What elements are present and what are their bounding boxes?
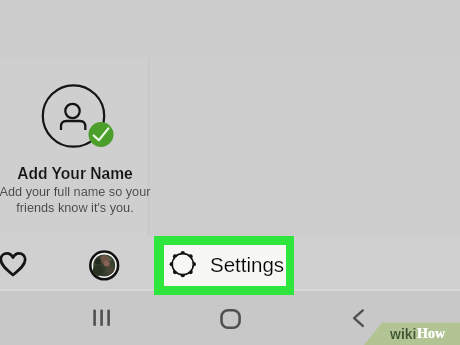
button[interactable]: Recent apps xyxy=(76,294,124,342)
staticText: Add Your Name xyxy=(0,165,211,182)
staticText: wiki xyxy=(390,326,417,342)
button[interactable]: Activity xyxy=(0,240,37,288)
button[interactable]: Home xyxy=(206,294,254,342)
staticText: How xyxy=(417,326,445,342)
button[interactable]: Profile xyxy=(80,240,128,288)
staticText: Settings xyxy=(210,253,285,276)
staticText: Add your full name so your friends know … xyxy=(0,185,211,215)
button[interactable]: Back xyxy=(336,294,384,342)
button[interactable]: Settings xyxy=(164,245,286,286)
